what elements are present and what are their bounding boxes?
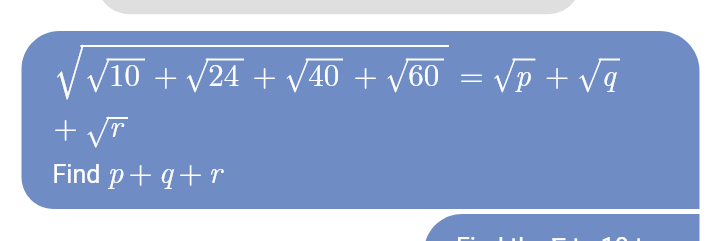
button[interactable]: Maths question message bubble — [0, 0, 720, 241]
